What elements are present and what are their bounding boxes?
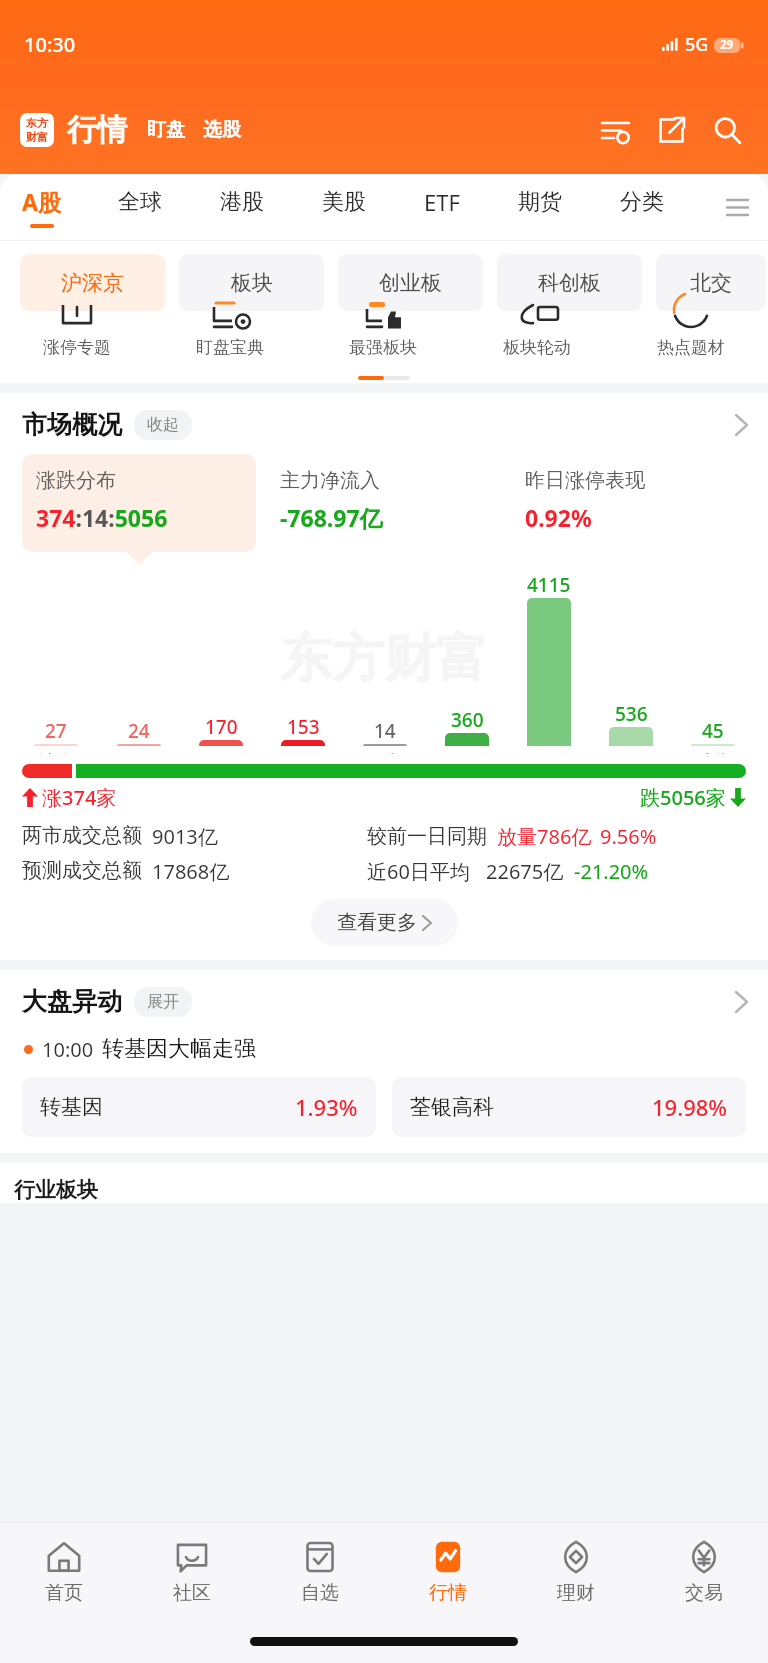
button[interactable]: 期货 <box>516 188 564 227</box>
staticText: 财富 <box>26 130 48 144</box>
staticText: 荃银高科 <box>410 1094 494 1120</box>
button[interactable]: 自选 <box>256 1523 384 1619</box>
staticText: 360 <box>451 707 484 733</box>
staticText: 10:30 <box>24 31 76 58</box>
button[interactable]: 选股 <box>203 118 241 142</box>
staticText: 14 <box>374 718 396 744</box>
button[interactable]: 港股 <box>218 188 266 227</box>
button[interactable]: 盯盘 <box>147 118 185 142</box>
button[interactable]: A股 <box>20 186 63 228</box>
button[interactable]: 首页 <box>0 1523 128 1619</box>
staticText: 行情 <box>67 111 127 149</box>
staticText: 分类 <box>620 188 664 216</box>
staticText: 19.98% <box>652 1092 728 1122</box>
staticText: 两市成交总额 <box>22 823 142 848</box>
staticText: 主力净流入 <box>280 468 380 493</box>
staticText: 9.56% <box>600 823 657 850</box>
button[interactable]: 美股 <box>320 188 368 227</box>
button[interactable]: 科创板 <box>497 254 642 311</box>
button[interactable]: 热点题材 <box>614 311 768 373</box>
staticText: 昨日涨停表现 <box>525 468 645 493</box>
staticText: 东方财富 <box>280 626 488 692</box>
button[interactable]: Search <box>706 109 748 151</box>
staticText: 4115 <box>527 572 571 598</box>
staticText: 大盘异动 <box>22 986 122 1017</box>
staticText: 板块轮动 <box>503 337 571 358</box>
staticText: 港股 <box>220 188 264 216</box>
staticText: 科创板 <box>538 270 601 296</box>
staticText: 展开 <box>147 992 179 1012</box>
button[interactable]: 行情 <box>384 1523 512 1619</box>
button[interactable]: 北交 <box>656 254 766 311</box>
staticText: 17868亿 <box>152 858 230 885</box>
button[interactable]: 最强板块 <box>306 311 460 373</box>
staticText: 预测成交总额 <box>22 858 142 883</box>
button[interactable]: 交易 <box>640 1523 768 1619</box>
button[interactable]: 主力净流入 <box>266 454 501 552</box>
staticText: 10:00 <box>42 1036 94 1063</box>
staticText: 45 <box>702 718 724 744</box>
staticText: 板块 <box>231 270 273 296</box>
button[interactable]: 社区 <box>128 1523 256 1619</box>
staticText: 153 <box>287 714 320 740</box>
button[interactable]: ETF <box>422 187 462 228</box>
button[interactable]: 分类 <box>618 188 666 227</box>
button[interactable]: 板块轮动 <box>460 311 614 373</box>
staticText: 北交 <box>690 270 732 296</box>
staticText: 536 <box>615 701 648 727</box>
staticText: A股 <box>22 186 61 217</box>
staticText: 170 <box>205 714 238 740</box>
staticText: 9013亿 <box>152 823 218 850</box>
button[interactable]: 创业板 <box>338 254 483 311</box>
staticText: 27 <box>45 718 67 744</box>
button[interactable]: 市场概况 <box>0 409 768 440</box>
button[interactable]: 查看更多 <box>311 899 458 946</box>
staticText: 转基因大幅走强 <box>102 1035 256 1063</box>
staticText: 跌5056家 <box>640 784 726 811</box>
button[interactable]: 全球 <box>116 188 164 227</box>
staticText: 转基因 <box>40 1094 103 1120</box>
staticText: 自选 <box>301 1581 339 1605</box>
staticText: 29 <box>720 37 734 53</box>
staticText: 创业板 <box>379 270 442 296</box>
staticText: 放量786亿 <box>497 823 592 850</box>
staticText: 374:14:5056 <box>36 502 168 533</box>
button[interactable]: 板块 <box>179 254 324 311</box>
staticText: 涨停 <box>39 751 73 754</box>
button[interactable]: 涨跌分布 <box>22 454 256 552</box>
button[interactable]: More tabs <box>720 190 754 224</box>
button[interactable]: 涨停专题 <box>0 311 153 373</box>
staticText: 市场概况 <box>22 409 122 440</box>
button[interactable]: 东方 <box>20 113 54 147</box>
staticText: 近60日平均 <box>367 858 470 885</box>
button[interactable]: 理财 <box>512 1523 640 1619</box>
staticText: 沪深京 <box>61 270 124 296</box>
button[interactable]: 盯盘宝典 <box>153 311 306 373</box>
staticText: 平盘 <box>368 751 402 754</box>
staticText: 首页 <box>45 1581 83 1605</box>
staticText: 涨跌分布 <box>36 468 116 493</box>
staticText: 涨停专题 <box>43 337 111 358</box>
staticText: 24 <box>128 718 150 744</box>
staticText: 美股 <box>322 188 366 216</box>
button[interactable]: 荃银高科 <box>392 1077 746 1137</box>
button[interactable]: 沪深京 <box>20 254 165 311</box>
staticText: 全球 <box>118 188 162 216</box>
button[interactable]: 昨日涨停表现 <box>511 454 746 552</box>
button[interactable]: Share <box>650 109 692 151</box>
staticText: 热点题材 <box>657 337 725 358</box>
staticText: 0.92% <box>525 502 592 533</box>
button[interactable]: Settings <box>594 109 636 151</box>
staticText: -21.20% <box>574 858 649 885</box>
staticText: 行业板块 <box>14 1177 98 1203</box>
button[interactable]: 转基因 <box>22 1077 376 1137</box>
staticText: 涨374家 <box>42 784 117 811</box>
staticText: 22675亿 <box>486 858 564 885</box>
staticText: 行情 <box>429 1581 467 1605</box>
staticText: 收起 <box>147 415 179 435</box>
button[interactable]: 大盘异动 <box>0 986 768 1017</box>
